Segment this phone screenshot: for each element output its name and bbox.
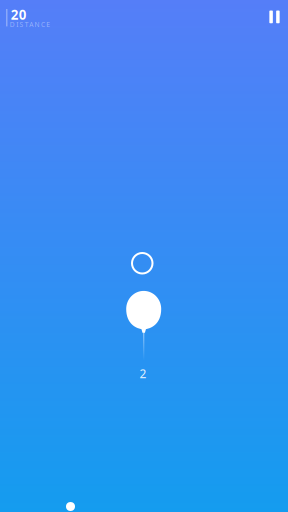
staticText: 20 — [11, 6, 27, 23]
staticText: 2 — [139, 365, 146, 381]
staticText: DISTANCE — [10, 20, 54, 29]
button[interactable]: Pause — [256, 0, 288, 34]
